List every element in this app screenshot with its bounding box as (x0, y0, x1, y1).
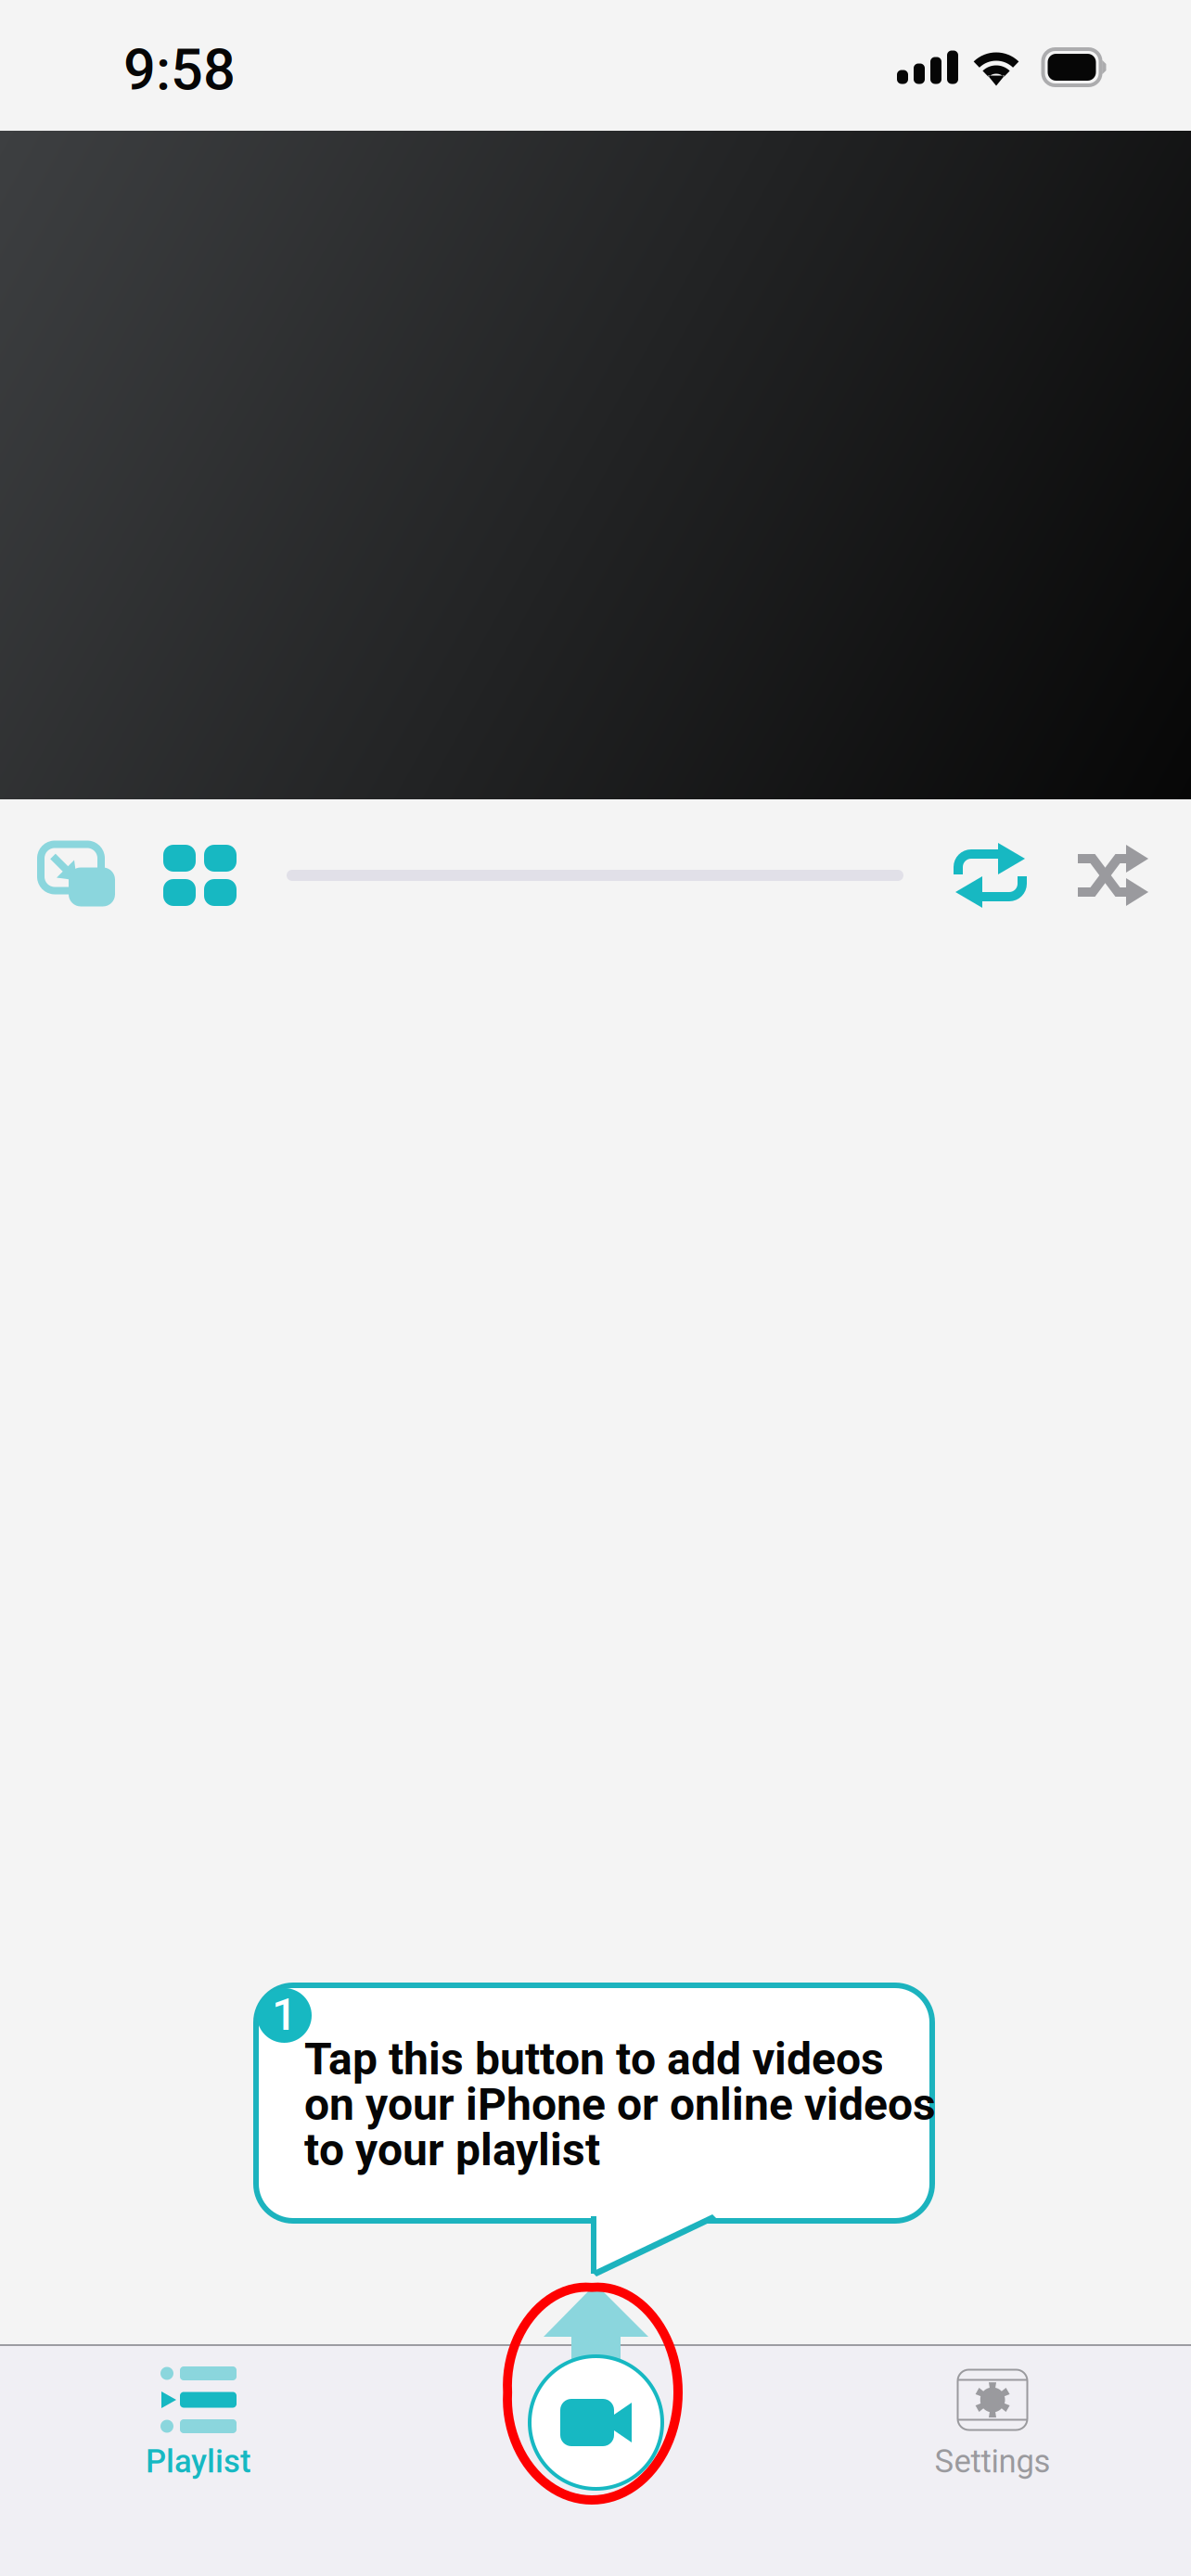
button[interactable]: Shuffle (1073, 845, 1149, 906)
button[interactable]: Picture in picture (41, 844, 115, 906)
staticText: on your iPhone or online videos (304, 2078, 936, 2131)
staticText: to your playlist (304, 2124, 600, 2176)
button[interactable]: Playlist (0, 2346, 397, 2576)
staticText: 1 (272, 1988, 297, 2041)
button[interactable]: Grid layout (163, 845, 237, 906)
staticText: 9:58 (123, 37, 236, 103)
staticText: Playlist (146, 2442, 251, 2480)
staticText: Tap this button to add videos (304, 2033, 884, 2085)
button[interactable]: Add video (528, 2354, 664, 2491)
button[interactable]: Repeat (954, 845, 1027, 906)
staticText: Settings (935, 2442, 1050, 2480)
button[interactable]: Settings (794, 2346, 1191, 2576)
